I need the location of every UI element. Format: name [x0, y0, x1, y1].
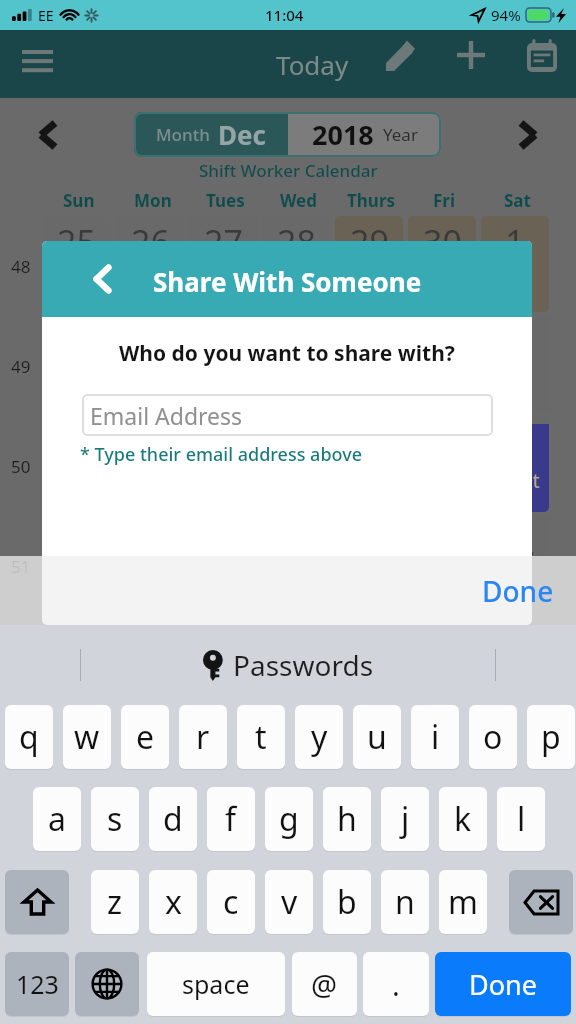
- button[interactable]: 27: [189, 216, 257, 312]
- button[interactable]: Backspace: [509, 870, 573, 934]
- button[interactable]: 26: [116, 216, 184, 312]
- staticText: w: [74, 715, 100, 759]
- button[interactable]: Calendar: [517, 30, 567, 80]
- button[interactable]: x: [149, 870, 197, 934]
- button[interactable]: 2: [42, 316, 111, 412]
- button[interactable]: 7: [408, 316, 476, 412]
- button[interactable]: @: [292, 952, 357, 1016]
- button[interactable]: w: [63, 705, 111, 769]
- button[interactable]: 2018: [288, 112, 441, 157]
- button[interactable]: n: [381, 870, 429, 934]
- button[interactable]: 13: [335, 416, 403, 512]
- button[interactable]: 6: [335, 316, 403, 412]
- staticText: Mon: [134, 189, 172, 212]
- button[interactable]: h: [323, 787, 371, 851]
- button[interactable]: 123: [5, 952, 69, 1016]
- staticText: 11: [204, 419, 243, 465]
- button[interactable]: 21: [408, 516, 476, 612]
- button[interactable]: Back: [76, 241, 128, 317]
- button[interactable]: z: [91, 870, 139, 934]
- button[interactable]: Passwords: [203, 646, 374, 684]
- staticText: Today: [276, 47, 349, 82]
- button[interactable]: l: [497, 787, 545, 851]
- button[interactable]: 12: [262, 416, 330, 512]
- button[interactable]: 14: [408, 416, 476, 512]
- button[interactable]: 25: [42, 216, 111, 312]
- button[interactable]: 30: [408, 216, 476, 312]
- button[interactable]: t: [237, 705, 285, 769]
- button[interactable]: Switch keyboard: [75, 952, 139, 1016]
- button[interactable]: i: [411, 705, 459, 769]
- staticText: y: [311, 715, 328, 759]
- button[interactable]: Done: [482, 572, 554, 610]
- button[interactable]: j: [381, 787, 429, 851]
- staticText: .: [392, 965, 400, 1004]
- button[interactable]: 10: [116, 416, 184, 512]
- staticText: 21: [423, 519, 462, 565]
- button[interactable]: Shift: [5, 870, 69, 934]
- staticText: Dec: [218, 117, 266, 152]
- button[interactable]: u: [353, 705, 401, 769]
- staticText: o: [483, 715, 503, 759]
- button[interactable]: d: [149, 787, 197, 851]
- button[interactable]: .: [363, 952, 429, 1016]
- staticText: Sun: [63, 189, 95, 212]
- button[interactable]: Edit: [375, 30, 425, 80]
- button[interactable]: p: [527, 705, 575, 769]
- staticText: 94%: [491, 5, 521, 25]
- button[interactable]: space: [147, 952, 285, 1016]
- button[interactable]: 9: [42, 416, 111, 512]
- staticText: b: [337, 880, 357, 924]
- button[interactable]: 18: [189, 516, 257, 612]
- staticText: 50: [11, 455, 31, 478]
- button[interactable]: e: [121, 705, 169, 769]
- button[interactable]: Previous month: [22, 112, 74, 157]
- staticText: 7: [432, 319, 452, 365]
- staticText: 28: [277, 219, 316, 265]
- button[interactable]: k: [439, 787, 487, 851]
- button[interactable]: 1: [481, 216, 549, 312]
- staticText: 29: [350, 219, 389, 265]
- staticText: g: [279, 797, 299, 841]
- staticText: v: [281, 880, 298, 924]
- staticText: 51: [11, 555, 31, 578]
- button[interactable]: 20: [335, 516, 403, 612]
- staticText: 17: [131, 519, 170, 565]
- button[interactable]: b: [323, 870, 371, 934]
- button[interactable]: Add: [446, 30, 496, 80]
- staticText: 123: [16, 967, 59, 1001]
- button[interactable]: r: [179, 705, 227, 769]
- button[interactable]: 19: [262, 516, 330, 612]
- button[interactable]: 16: [42, 516, 111, 612]
- button[interactable]: 22: [481, 516, 549, 612]
- button[interactable]: 8: [481, 316, 549, 412]
- staticText: Share With Someone: [153, 264, 422, 299]
- button[interactable]: s: [91, 787, 139, 851]
- staticText: z: [107, 880, 123, 924]
- button[interactable]: 28: [262, 216, 330, 312]
- button[interactable]: Done: [435, 952, 571, 1016]
- button[interactable]: y: [295, 705, 343, 769]
- button[interactable]: Month: [134, 112, 288, 157]
- button[interactable]: f: [207, 787, 255, 851]
- button[interactable]: Menu: [9, 30, 65, 86]
- button[interactable]: Next month: [502, 112, 554, 157]
- button[interactable]: 4: [189, 316, 257, 412]
- button[interactable]: 3: [116, 316, 184, 412]
- button[interactable]: v: [265, 870, 313, 934]
- staticText: 2018: [312, 116, 374, 153]
- button[interactable]: m: [439, 870, 487, 934]
- button[interactable]: o: [469, 705, 517, 769]
- button[interactable]: c: [207, 870, 255, 934]
- button[interactable]: 5: [262, 316, 330, 412]
- button[interactable]: g: [265, 787, 313, 851]
- button[interactable]: q: [5, 705, 53, 769]
- staticText: Passwords: [233, 646, 374, 684]
- button[interactable]: 15: [481, 416, 549, 512]
- button[interactable]: 17: [116, 516, 184, 612]
- button[interactable]: 29: [335, 216, 403, 312]
- button[interactable]: 11: [189, 416, 257, 512]
- button[interactable]: a: [33, 787, 81, 851]
- button[interactable]: Email Address: [82, 394, 493, 436]
